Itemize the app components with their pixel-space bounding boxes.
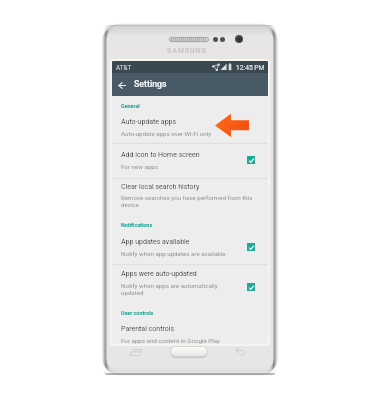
- staticText: Notify when apps are automatically updat…: [121, 282, 223, 297]
- staticText: Settings: [134, 79, 167, 89]
- button[interactable]: [112, 319, 268, 344]
- staticText: SAMSUNG: [167, 47, 207, 55]
- button[interactable]: Home: [170, 346, 208, 358]
- staticText: General: [121, 103, 140, 109]
- staticText: For new apps: [121, 163, 158, 170]
- staticText: Apps were auto-updated: [121, 270, 197, 278]
- staticText: Notifications: [121, 222, 153, 228]
- button[interactable]: Back: [230, 345, 250, 359]
- staticText: Add icon to Home screen: [121, 151, 200, 159]
- button[interactable]: [112, 144, 268, 178]
- button[interactable]: [112, 179, 268, 213]
- staticText: AT&T: [116, 64, 132, 71]
- staticText: Auto-update apps: [121, 118, 177, 126]
- staticText: Remove searches you have performed from …: [121, 194, 261, 209]
- staticText: Clear local search history: [121, 183, 200, 191]
- button[interactable]: Recent apps: [126, 345, 146, 359]
- staticText: Parental controls: [121, 325, 175, 333]
- button[interactable]: [112, 265, 268, 302]
- staticText: For apps and content in Google Play: [121, 337, 221, 344]
- staticText: User controls: [121, 310, 154, 316]
- staticText: Auto-update apps over Wi-Fi only: [121, 130, 212, 137]
- button[interactable]: [112, 232, 268, 264]
- button[interactable]: [112, 112, 268, 143]
- staticText: App updates available: [121, 238, 190, 246]
- button[interactable]: Navigate up: [114, 77, 130, 93]
- staticText: 12:45 PM: [236, 64, 265, 72]
- staticText: Notify when app updates are available: [121, 250, 226, 257]
